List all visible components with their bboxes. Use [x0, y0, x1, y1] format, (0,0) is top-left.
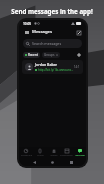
button[interactable]: Groups	[47, 147, 60, 159]
button[interactable]: Jordan Baker	[22, 60, 83, 74]
staticText: Groups	[50, 154, 58, 157]
staticText: Phone	[37, 154, 44, 157]
staticText: 14:1	[74, 65, 80, 69]
staticText: Groups	[44, 53, 55, 57]
staticText: Messages	[32, 29, 53, 35]
staticText: Recent	[28, 53, 38, 57]
button[interactable]: Menu	[23, 29, 30, 36]
staticText: Send messages in the app!	[11, 7, 93, 15]
button[interactable]: Home	[49, 159, 56, 166]
button[interactable]: Messages	[73, 147, 86, 159]
button[interactable]: Groups	[42, 52, 60, 58]
button[interactable]: Back	[31, 159, 38, 166]
button[interactable]: Search messages	[23, 39, 82, 48]
staticText: Organization	[60, 154, 73, 157]
staticText: Dashboard	[21, 154, 32, 157]
button[interactable]: New message	[75, 51, 82, 58]
staticText: 10:05	[23, 22, 32, 26]
button[interactable]: Phone	[33, 147, 47, 159]
button[interactable]: Organization	[60, 147, 73, 159]
button[interactable]: Recent	[23, 52, 40, 58]
button[interactable]: Dashboard	[19, 147, 33, 159]
staticText: Search messages	[32, 41, 62, 46]
staticText: Messages	[75, 154, 85, 157]
staticText: http://bit.ly/ lib-announc...	[38, 68, 74, 72]
button[interactable]: Recents	[68, 159, 75, 166]
staticText: Jordan Baker	[35, 62, 58, 67]
button[interactable]: Compose	[75, 29, 82, 36]
